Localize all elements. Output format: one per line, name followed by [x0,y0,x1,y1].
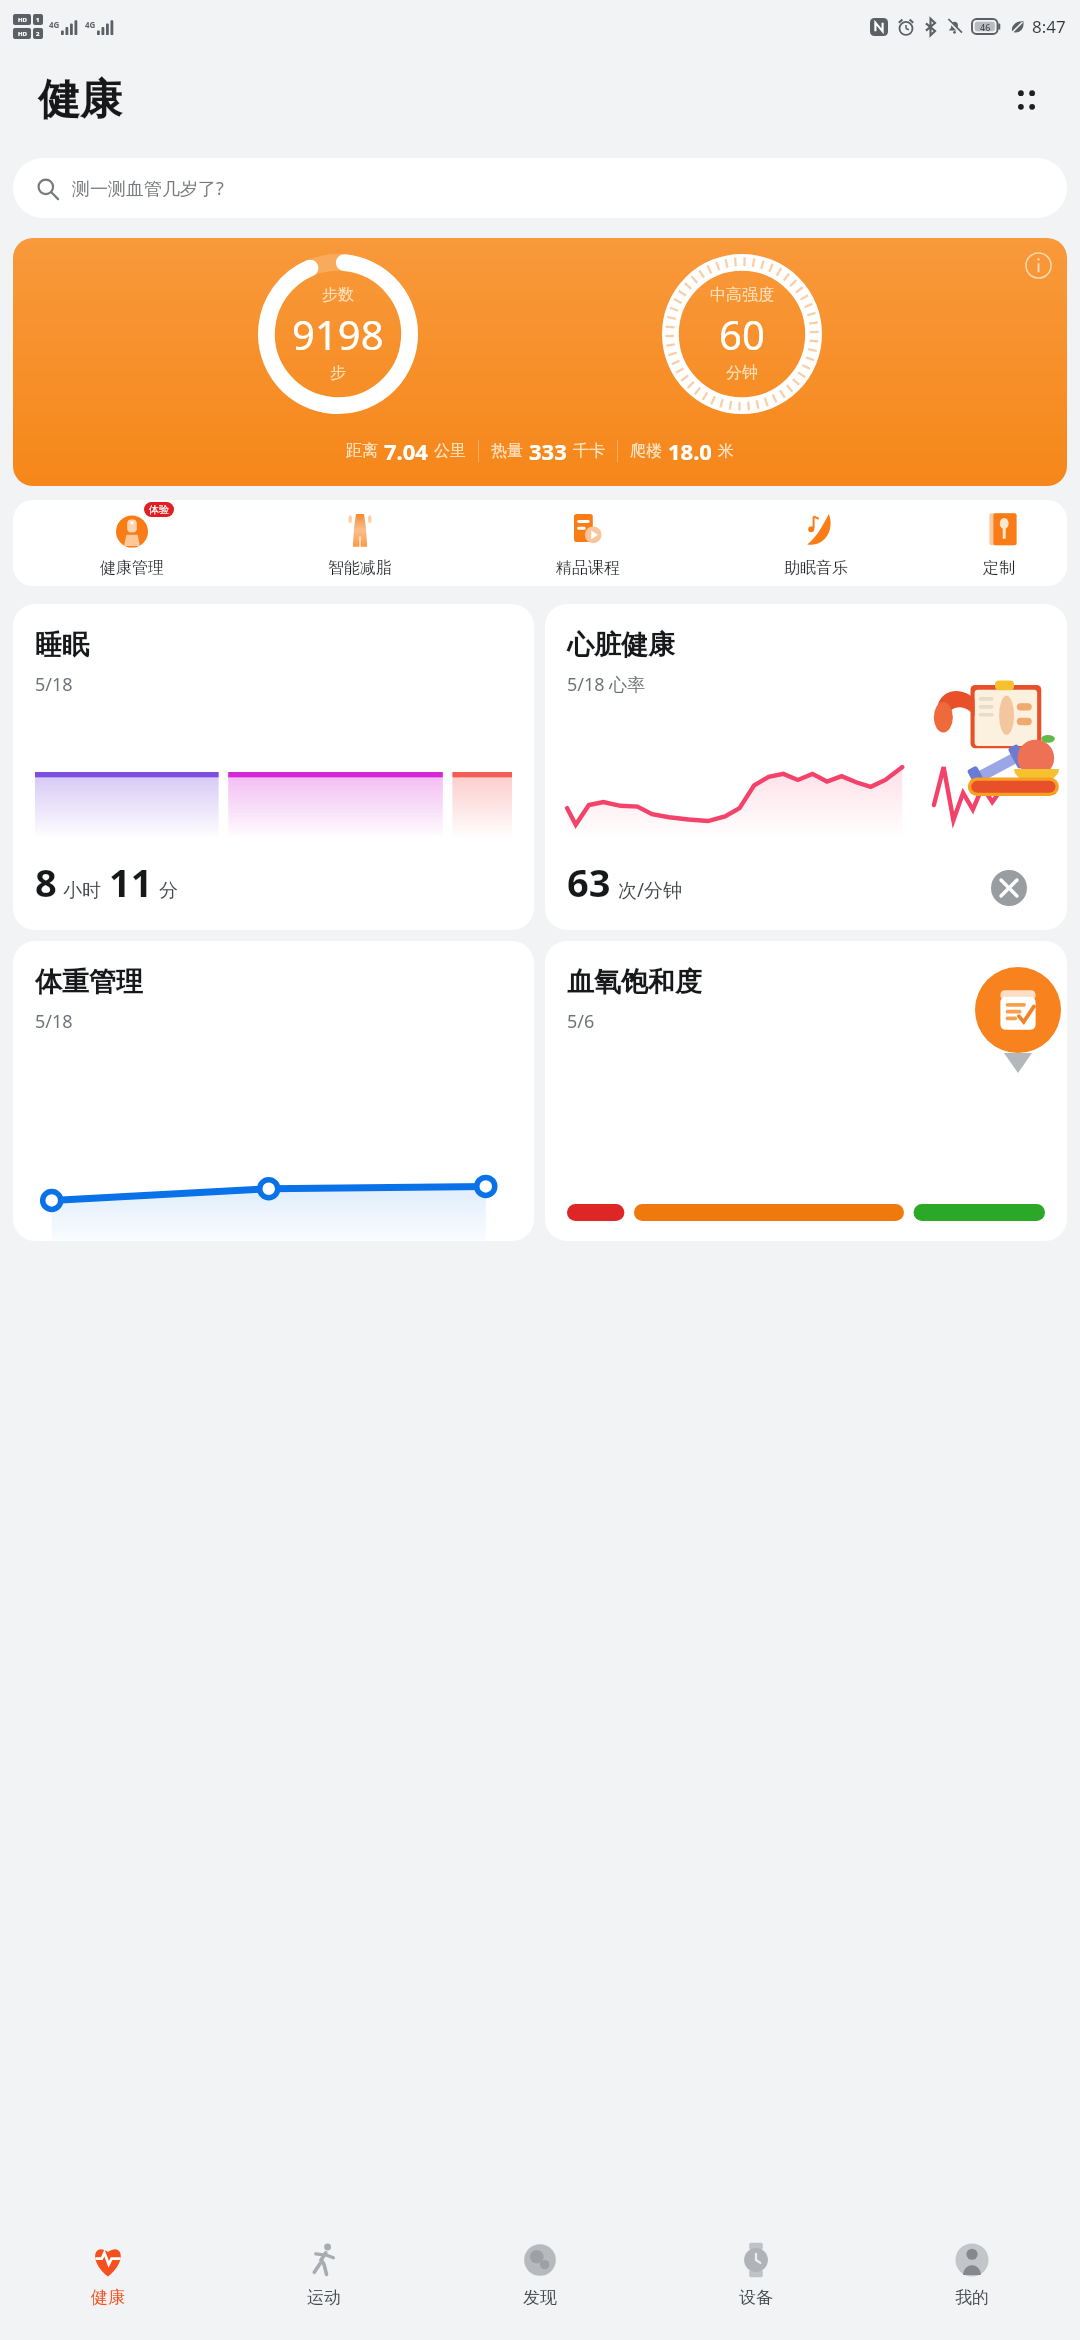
staticText: 睡眠 [35,628,89,662]
staticText: 4G [49,19,60,30]
staticText: 智能减脂 [328,558,392,578]
button[interactable]: Close ad [991,870,1027,906]
button[interactable]: 体验 [17,500,246,586]
staticText: 63 [567,856,611,908]
button[interactable]: 体重管理 [13,941,534,1241]
button[interactable]: 睡眠 [13,604,534,930]
staticText: 8 [35,856,57,908]
staticText: 18.0 [668,436,712,466]
staticText: 333 [529,436,567,466]
button[interactable]: 智能减脂 [246,500,474,586]
staticText: 热量 [491,441,523,461]
staticText: 1 [36,16,40,24]
staticText: HD [18,30,27,38]
staticText: 定制 [983,558,1015,578]
button[interactable]: Info [1020,247,1056,283]
button[interactable]: 定制 [930,500,1067,586]
button[interactable]: 发现 [432,2210,648,2340]
button[interactable]: 设备 [648,2210,864,2340]
staticText: 次/分钟 [618,877,683,903]
staticText: 8:47 [1032,15,1066,38]
staticText: 体验 [149,503,169,516]
staticText: 测一测血管几岁了? [72,176,224,201]
staticText: 公里 [434,441,466,461]
staticText: 距离 [346,441,378,461]
staticText: 中高强度 [710,285,774,305]
button[interactable]: 精品课程 [474,500,702,586]
staticText: 健康 [38,74,122,127]
staticText: 精品课程 [556,558,620,578]
staticText: 米 [718,441,734,461]
button[interactable]: 心脏健康 [545,604,1067,930]
staticText: 血氧饱和度 [567,965,702,999]
staticText: 5/18 心率 [567,672,646,697]
button[interactable]: Start measurement [975,967,1061,1053]
staticText: 7.04 [384,436,428,466]
button[interactable]: Info [13,238,1067,486]
staticText: 11 [109,856,153,908]
staticText: 5/18 [35,672,73,697]
staticText: 运动 [307,2287,341,2308]
staticText: 46 [980,21,991,33]
button[interactable]: More options [996,70,1056,130]
staticText: 步 [330,363,346,383]
staticText: 小时 [63,879,101,903]
staticText: 60 [719,307,765,361]
button[interactable]: 血氧饱和度 [545,941,1067,1241]
staticText: 步数 [322,285,354,305]
staticText: 爬楼 [630,441,662,461]
staticText: 9198 [292,307,384,361]
staticText: 助眠音乐 [784,558,848,578]
staticText: 心脏健康 [567,628,675,662]
button[interactable]: 健康 [0,2210,216,2340]
staticText: 5/6 [567,1009,595,1034]
staticText: 发现 [523,2287,557,2308]
button[interactable]: 我的 [864,2210,1080,2340]
button[interactable]: 测一测血管几岁了? [13,158,1067,218]
staticText: 4G [85,19,96,30]
staticText: 5/18 [35,1009,73,1034]
staticText: 2 [36,30,40,38]
staticText: 千卡 [573,441,605,461]
staticText: 分钟 [726,363,758,383]
staticText: 设备 [739,2287,773,2308]
staticText: 分 [159,879,178,903]
staticText: 我的 [955,2287,989,2308]
staticText: 健康管理 [100,558,164,578]
staticText: HD [18,16,27,24]
staticText: 健康 [91,2287,125,2308]
staticText: 体重管理 [35,965,143,999]
button[interactable]: 运动 [216,2210,432,2340]
button[interactable]: 助眠音乐 [702,500,930,586]
